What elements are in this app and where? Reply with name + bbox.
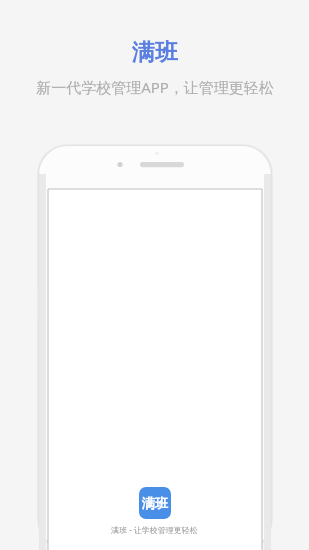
button[interactable]: 满班 [132,38,178,67]
button[interactable]: 满班 app icon [139,487,171,519]
staticText: 新一代学校管理APP，让管理更轻松 [36,77,274,97]
button[interactable]: App preview on phone [37,144,273,550]
staticText: 满班 [142,495,168,511]
staticText: 满班 [132,38,178,67]
staticText: 满班 - 让学校管理更轻松 [111,524,198,535]
